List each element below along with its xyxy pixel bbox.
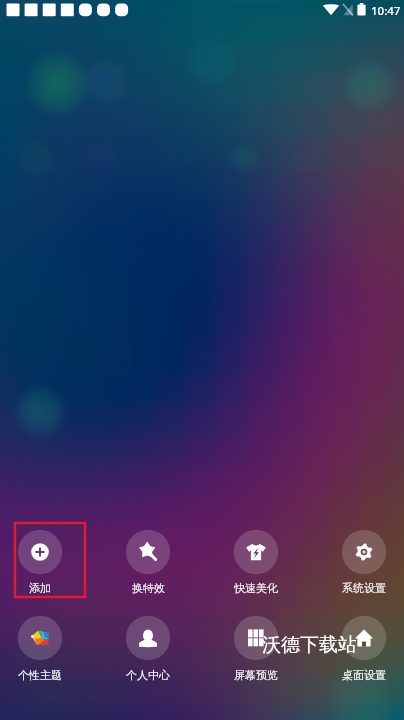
staticText: 桌面设置 — [342, 668, 386, 682]
button[interactable]: 个人中心 — [113, 608, 183, 676]
button[interactable]: 快速美化 — [221, 522, 291, 590]
button[interactable]: 添加 — [5, 522, 75, 590]
staticText: 添加 — [29, 581, 51, 595]
button[interactable]: 个性主题 — [5, 608, 75, 676]
staticText: 个人中心 — [126, 668, 170, 682]
button[interactable]: 桌面设置 — [329, 608, 399, 676]
staticText: 个性主题 — [18, 668, 62, 682]
staticText: 系统设置 — [342, 581, 386, 595]
staticText: 换特效 — [132, 581, 165, 595]
staticText: 沃德下载站 — [262, 633, 357, 657]
staticText: 屏幕预览 — [234, 668, 278, 682]
staticText: 快速美化 — [234, 581, 278, 595]
button[interactable]: 屏幕预览 — [221, 608, 291, 676]
button[interactable]: 系统设置 — [329, 522, 399, 590]
button[interactable]: 换特效 — [113, 522, 183, 590]
staticText: 10:47 — [371, 3, 401, 19]
